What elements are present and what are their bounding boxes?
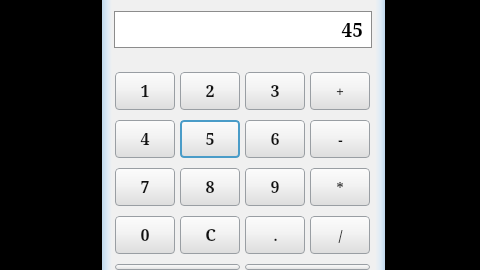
staticText: -	[338, 130, 343, 149]
staticText: 6	[270, 128, 280, 150]
button[interactable]: 9	[245, 168, 305, 206]
button[interactable]: Display	[114, 11, 372, 48]
button[interactable]: 8	[180, 168, 240, 206]
staticText: C	[205, 224, 216, 246]
staticText: 1	[140, 80, 150, 102]
staticText: 0	[140, 224, 150, 246]
button[interactable]: .	[245, 216, 305, 254]
staticText: 45	[341, 17, 363, 43]
button[interactable]: +	[310, 72, 370, 110]
button[interactable]: 2	[180, 72, 240, 110]
button[interactable]: =	[245, 264, 370, 270]
button[interactable]: 0	[115, 216, 175, 254]
staticText: 3	[270, 80, 280, 102]
staticText: =	[303, 264, 313, 270]
staticText: 7	[140, 176, 150, 198]
button[interactable]: -	[310, 120, 370, 158]
staticText: 8	[205, 176, 215, 198]
staticText: .	[273, 226, 278, 245]
staticText: 4	[140, 128, 150, 150]
button[interactable]: *	[310, 168, 370, 206]
staticText: /	[338, 226, 343, 245]
button[interactable]: 1	[115, 72, 175, 110]
button[interactable]: 3	[245, 72, 305, 110]
button[interactable]: C	[180, 216, 240, 254]
staticText: CE	[167, 264, 189, 270]
button[interactable]: /	[310, 216, 370, 254]
button[interactable]: 7	[115, 168, 175, 206]
button[interactable]: 4	[115, 120, 175, 158]
button[interactable]: 5	[180, 120, 240, 158]
button[interactable]: 6	[245, 120, 305, 158]
staticText: *	[336, 178, 344, 197]
button[interactable]: CE	[115, 264, 240, 270]
staticText: 2	[205, 80, 215, 102]
staticText: 5	[205, 128, 215, 150]
staticText: 9	[270, 176, 280, 198]
staticText: +	[336, 82, 344, 101]
